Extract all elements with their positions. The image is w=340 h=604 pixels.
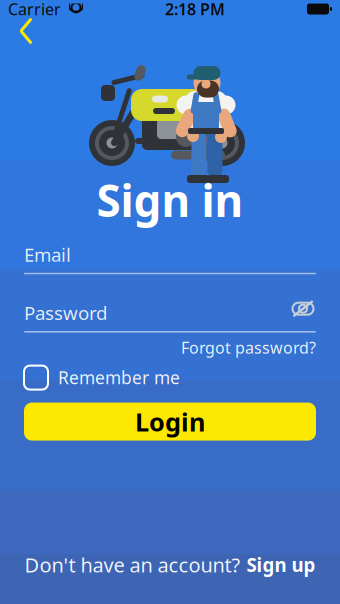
button[interactable]: Remember me (24, 366, 180, 390)
button[interactable]: Back (4, 9, 48, 53)
button[interactable]: Login (24, 403, 316, 441)
staticText: Password (24, 300, 107, 325)
staticText: Forgot password? (181, 337, 316, 358)
staticText: Carrier (8, 0, 61, 20)
staticText: Don't have an account? (24, 551, 240, 578)
button[interactable]: Email (24, 242, 316, 274)
staticText: Remember me (58, 366, 180, 389)
staticText: Sign up (246, 552, 315, 577)
staticText: 2:18 PM (165, 0, 225, 20)
staticText: Sign in (96, 171, 243, 229)
button[interactable]: Forgot password? (181, 337, 316, 358)
staticText: Login (135, 405, 205, 438)
staticText: Email (24, 242, 71, 267)
button[interactable]: Don't have an account? (24, 551, 315, 578)
button[interactable]: Password (24, 300, 316, 333)
